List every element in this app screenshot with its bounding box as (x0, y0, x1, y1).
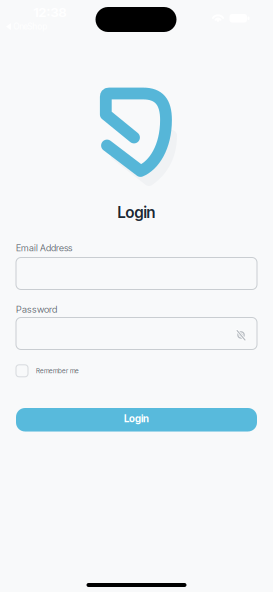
button[interactable]: Show password (233, 327, 249, 343)
button[interactable]: Remember me (16, 365, 79, 377)
staticText: Password (16, 303, 57, 315)
button[interactable]: Email Address (16, 257, 257, 289)
staticText: Email Address (16, 242, 72, 253)
button[interactable]: Login (16, 408, 257, 431)
staticText: Remember me (36, 367, 79, 375)
staticText: Login (117, 203, 155, 222)
staticText: Login (124, 412, 149, 425)
button[interactable]: Password (16, 317, 257, 349)
